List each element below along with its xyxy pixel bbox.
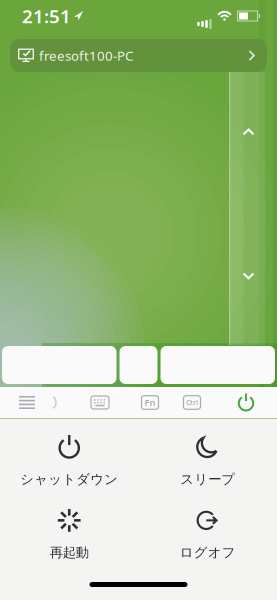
- button[interactable]: Middle click: [119, 346, 157, 384]
- button[interactable]: ログオフ: [138, 507, 277, 561]
- button[interactable]: Scroll down: [235, 263, 261, 289]
- button[interactable]: 再起動: [0, 507, 138, 561]
- button[interactable]: Modifier keys: [177, 387, 207, 418]
- button[interactable]: シャットダウン: [0, 434, 138, 487]
- button[interactable]: スリープ: [138, 434, 277, 487]
- button[interactable]: Right click: [160, 346, 275, 384]
- staticText: シャットダウン: [20, 471, 118, 487]
- staticText: ログオフ: [180, 544, 236, 561]
- staticText: Ctrl: [186, 398, 198, 407]
- staticText: スリープ: [180, 471, 235, 487]
- staticText: Fn: [144, 396, 155, 409]
- button[interactable]: freesoft100-PC: [10, 39, 267, 72]
- button[interactable]: Keyboard: [85, 387, 115, 418]
- button[interactable]: Power options: [231, 387, 261, 418]
- button[interactable]: Scroll up: [235, 119, 261, 145]
- button[interactable]: Function keys: [135, 387, 165, 418]
- staticText: 21:51: [22, 4, 71, 28]
- button[interactable]: Left click: [2, 346, 116, 384]
- button[interactable]: Menu: [12, 387, 42, 418]
- staticText: freesoft100-PC: [39, 47, 133, 64]
- staticText: 再起動: [50, 544, 89, 561]
